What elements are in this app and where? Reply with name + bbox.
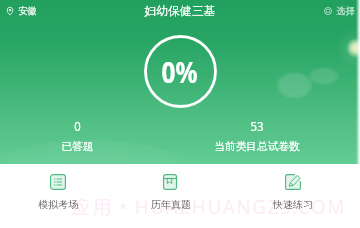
staticText: 模拟考场 — [38, 198, 78, 211]
staticText: 安徽 — [18, 5, 37, 17]
staticText: 0% — [161, 52, 197, 91]
button[interactable]: 安徽 — [0, 2, 43, 20]
button[interactable]: 选择 — [318, 2, 360, 20]
staticText: 妇幼保健三基 — [144, 4, 216, 19]
staticText: 应用 • HUAZHUANGZS.COM — [72, 194, 347, 220]
button[interactable]: 历年真题 — [115, 170, 226, 215]
button[interactable]: 快速练习 — [226, 170, 360, 215]
button[interactable]: 模拟考场 — [0, 170, 115, 215]
staticText: 0 — [74, 118, 81, 135]
staticText: 53 — [250, 118, 263, 135]
other: 选择 — [324, 7, 332, 15]
staticText: 选择 — [336, 5, 355, 17]
staticText: 历年真题 — [151, 198, 191, 211]
staticText: 已答题 — [61, 140, 94, 153]
staticText: 快速练习 — [273, 198, 313, 211]
staticText: 当前类目总试卷数 — [214, 140, 300, 153]
